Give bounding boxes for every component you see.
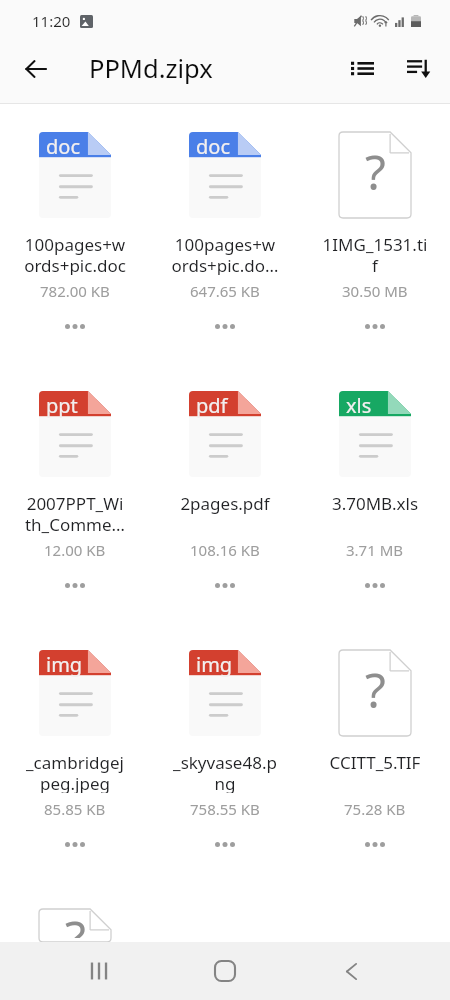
button[interactable]: More options xyxy=(354,574,396,596)
button[interactable]: doc xyxy=(0,104,150,363)
staticText: xls xyxy=(346,392,372,419)
button[interactable]: Back xyxy=(323,943,379,999)
staticText: 75.28 KB xyxy=(344,799,406,819)
button[interactable]: ? xyxy=(300,104,450,363)
button[interactable]: More options xyxy=(54,833,96,855)
staticText: 782.00 KB xyxy=(40,281,110,301)
button[interactable]: xls xyxy=(300,363,450,622)
button[interactable]: More options xyxy=(54,315,96,337)
staticText: 12.00 KB xyxy=(44,540,106,560)
staticText: pdf xyxy=(196,392,228,419)
staticText: _skyvase48.p ng xyxy=(152,751,298,793)
staticText: 2pages.pdf xyxy=(152,492,298,515)
staticText: ? xyxy=(365,657,386,722)
button[interactable]: doc xyxy=(150,104,300,363)
staticText: 647.65 KB xyxy=(190,281,260,301)
staticText: 1IMG_1531.ti f xyxy=(302,233,448,275)
button[interactable]: More options xyxy=(354,833,396,855)
staticText: 30.50 MB xyxy=(342,281,408,301)
button[interactable]: More options xyxy=(354,315,396,337)
staticText: 108.16 KB xyxy=(190,540,260,560)
button[interactable]: More options xyxy=(204,833,246,855)
button[interactable]: Recent apps xyxy=(71,943,127,999)
staticText: ? xyxy=(365,139,386,204)
button[interactable]: More options xyxy=(204,315,246,337)
staticText: doc xyxy=(46,133,80,160)
staticText: 2007PPT_Wi th_Comme… xyxy=(2,492,148,534)
staticText: CCITT_5.TIF xyxy=(302,751,448,774)
button[interactable]: ? xyxy=(0,881,150,942)
button[interactable]: More options xyxy=(54,574,96,596)
button[interactable]: ppt xyxy=(0,363,150,622)
button[interactable]: img xyxy=(0,622,150,881)
staticText: 100pages+w ords+pic.doc xyxy=(2,233,148,275)
staticText: 85.85 KB xyxy=(44,799,106,819)
button[interactable]: View mode xyxy=(336,42,388,95)
staticText: ppt xyxy=(46,392,78,419)
button[interactable]: More options xyxy=(204,574,246,596)
staticText: doc xyxy=(196,133,230,160)
staticText: 11:20 xyxy=(32,11,71,31)
button[interactable]: Sort xyxy=(388,42,450,95)
button[interactable]: ? xyxy=(300,622,450,881)
button[interactable]: Back xyxy=(0,42,72,95)
button[interactable]: img xyxy=(150,622,300,881)
staticText: 100pages+w ords+pic.do… xyxy=(152,233,298,275)
staticText: _cambridgej peg.jpeg xyxy=(2,751,148,793)
staticText: img xyxy=(46,651,83,678)
staticText: PPMd.zipx xyxy=(89,51,213,86)
staticText: img xyxy=(196,651,233,678)
staticText: ? xyxy=(65,905,86,938)
staticText: 3.70MB.xls xyxy=(302,492,448,515)
button[interactable]: Home xyxy=(197,943,253,999)
button[interactable]: pdf xyxy=(150,363,300,622)
staticText: 758.55 KB xyxy=(190,799,260,819)
staticText: 3.71 MB xyxy=(346,540,404,560)
